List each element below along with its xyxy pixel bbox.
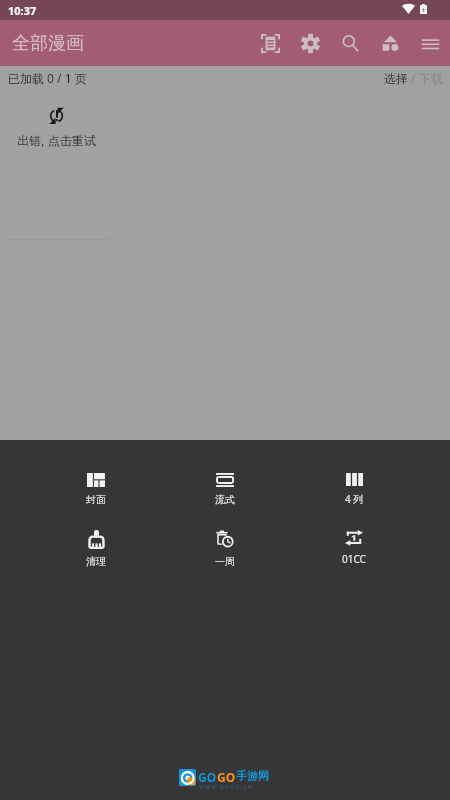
staticText: 选择	[384, 71, 408, 86]
staticText: 10:37	[8, 3, 37, 18]
button[interactable]: Scan document	[250, 20, 290, 66]
button[interactable]: 4 列	[322, 473, 386, 506]
staticText: W W W . G O G O . C N	[199, 784, 252, 791]
staticText: 01CC	[342, 552, 366, 566]
staticText: 下载	[419, 71, 443, 86]
button[interactable]: 封面	[64, 473, 128, 506]
staticText: 一周	[215, 555, 235, 568]
button[interactable]: 流式	[193, 473, 257, 506]
button[interactable]: Menu	[410, 20, 450, 66]
button[interactable]: Search	[330, 20, 370, 66]
staticText: GO	[198, 769, 217, 785]
button[interactable]: 01CC	[322, 530, 386, 566]
staticText: 全部漫画	[12, 32, 84, 55]
button[interactable]: 一周	[193, 530, 257, 568]
staticText: 4 列	[345, 492, 364, 506]
button[interactable]: 选择	[384, 71, 408, 86]
staticText: 封面	[86, 493, 106, 506]
staticText: 已加载 0 / 1 页	[8, 70, 87, 86]
staticText: /	[408, 70, 419, 86]
staticText: 清理	[86, 555, 106, 568]
button[interactable]: Settings	[290, 20, 330, 66]
button[interactable]: 下载	[419, 71, 443, 86]
staticText: 手游网	[236, 769, 269, 783]
staticText: 出错, 点击重试	[17, 132, 96, 148]
button[interactable]: Category	[370, 20, 410, 66]
button[interactable]: 清理	[64, 530, 128, 568]
staticText: GO	[217, 769, 236, 785]
button[interactable]: 出错, 点击重试	[4, 98, 109, 239]
staticText: 流式	[215, 493, 235, 506]
